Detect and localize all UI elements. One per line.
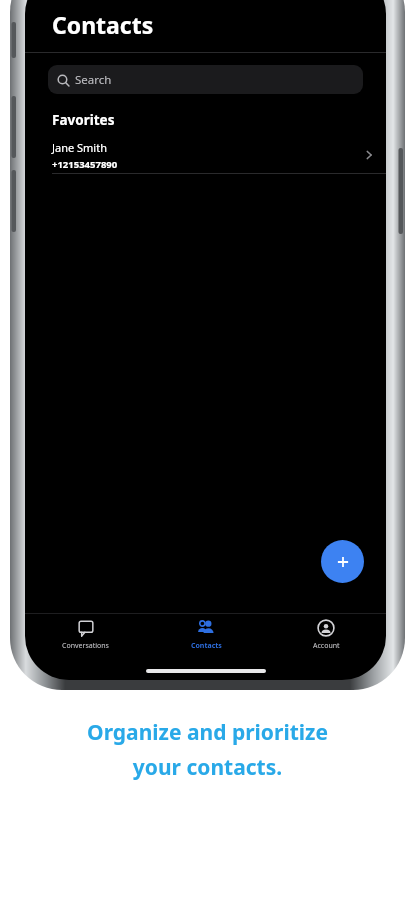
button[interactable]: Conversations <box>25 614 146 662</box>
staticText: Jane Smith <box>52 140 107 155</box>
staticText: Contacts <box>191 641 222 651</box>
staticText: +12153457890 <box>52 158 118 171</box>
staticText: Organize and prioritize your contacts. <box>87 718 328 782</box>
button[interactable]: Search <box>48 65 363 94</box>
staticText: Search <box>75 72 112 88</box>
staticText: Contacts <box>52 9 154 40</box>
button[interactable]: Contacts <box>146 614 266 662</box>
staticText: Favorites <box>52 111 115 129</box>
staticText: Conversations <box>62 641 109 651</box>
button[interactable]: Add contact <box>321 540 364 583</box>
button[interactable]: Account <box>266 614 386 662</box>
staticText: Account <box>313 641 340 651</box>
button[interactable]: Jane Smith <box>52 137 377 173</box>
